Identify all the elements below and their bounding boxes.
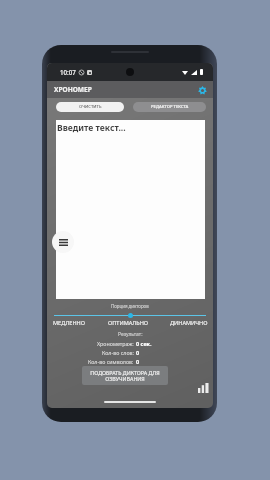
staticText: 0: [136, 349, 140, 356]
staticText: 10:07: [60, 68, 76, 76]
button[interactable]: ОЧИСТИТЬ: [56, 102, 124, 112]
staticText: Кол-во символов:: [88, 358, 134, 365]
staticText: Порция дикторов: [111, 303, 149, 309]
staticText: Кол-во слов:: [102, 349, 134, 356]
button[interactable]: ПОДОБРАТЬ ДИКТОРА ДЛЯ ОЗВУЧИВАНИЯ: [82, 366, 168, 385]
staticText: МЕДЛЕННО: [53, 319, 86, 327]
staticText: 0: [136, 358, 140, 365]
button[interactable]: РЕДАКТОР ТЕКСТА: [133, 102, 206, 112]
staticText: ПОДОБРАТЬ ДИКТОРА ДЛЯ ОЗВУЧИВАНИЯ: [90, 369, 160, 383]
staticText: Результат:: [118, 331, 143, 338]
staticText: Введите текст...: [57, 122, 126, 134]
staticText: ОЧИСТИТЬ: [79, 104, 102, 110]
staticText: ОПТИМАЛЬНО: [108, 319, 149, 327]
button[interactable]: Statistics: [198, 383, 209, 393]
button[interactable]: Settings: [196, 84, 208, 96]
staticText: РЕДАКТОР ТЕКСТА: [151, 104, 189, 110]
staticText: ХРОНОМЕР: [54, 85, 92, 94]
staticText: Хронометраж:: [97, 340, 134, 347]
button[interactable]: Menu: [52, 231, 74, 253]
staticText: ДИНАМИЧНО: [170, 319, 208, 327]
staticText: 0 сек.: [136, 340, 152, 347]
